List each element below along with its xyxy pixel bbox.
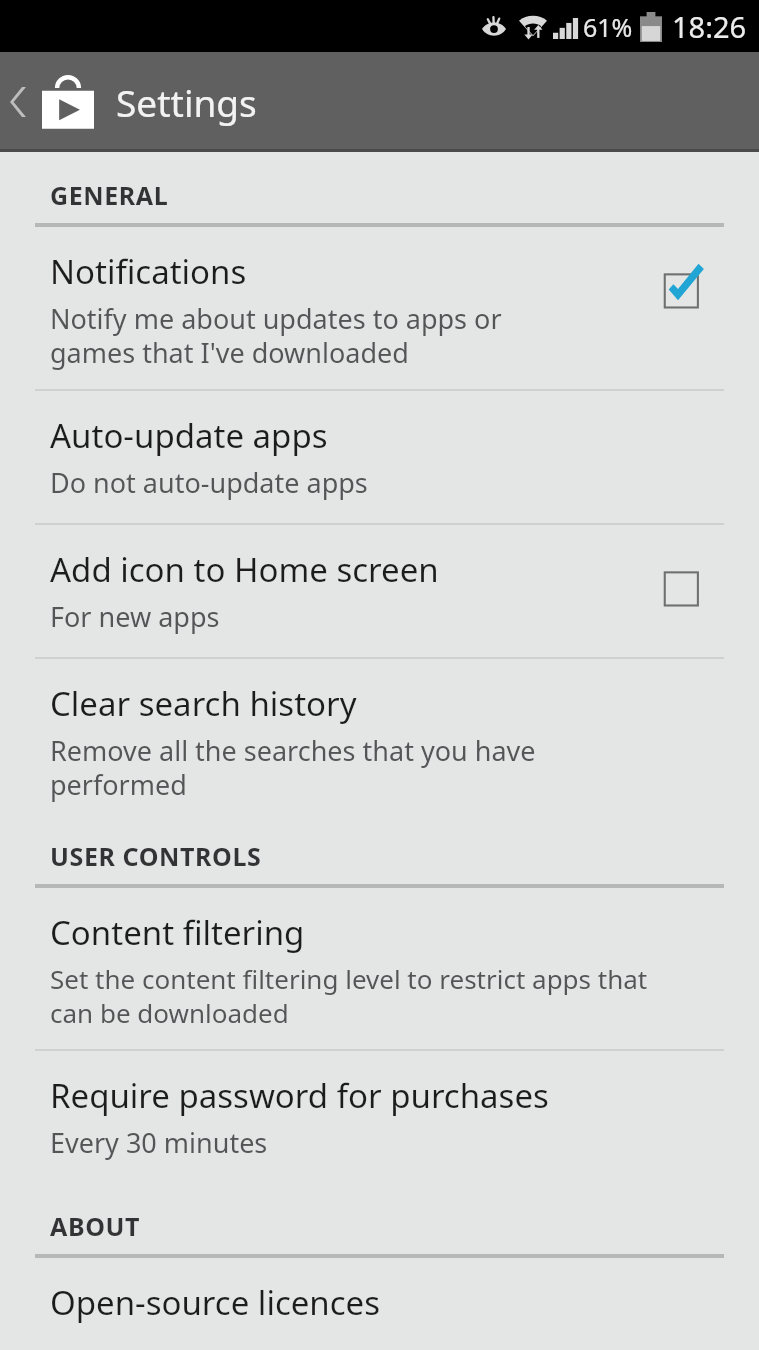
staticText: 61%	[583, 10, 633, 44]
button[interactable]: Open-source licences	[0, 1258, 759, 1350]
staticText: Open-source licences	[50, 1280, 380, 1325]
staticText: Notify me about updates to apps or games…	[50, 300, 502, 371]
button[interactable]: Auto-update apps	[0, 391, 759, 523]
staticText: Do not auto-update apps	[50, 464, 368, 501]
button[interactable]: Clear search history	[0, 659, 759, 813]
staticText: GENERAL	[50, 178, 169, 212]
staticText: Require password for purchases	[50, 1073, 549, 1118]
button[interactable]: Navigate up	[0, 52, 100, 152]
staticText: Settings	[116, 77, 257, 127]
button[interactable]: Unchecked	[661, 564, 709, 612]
staticText: Clear search history	[50, 681, 357, 726]
button[interactable]: Content filtering	[0, 888, 759, 1049]
button[interactable]: Require password for purchases	[0, 1051, 759, 1183]
staticText: Notifications	[50, 249, 247, 294]
staticText: Add icon to Home screen	[50, 547, 439, 592]
staticText: Content filtering	[50, 910, 305, 955]
button[interactable]: Notifications	[0, 227, 759, 389]
button[interactable]: Add icon to Home screen	[0, 525, 759, 657]
staticText: Every 30 minutes	[50, 1124, 268, 1161]
staticText: ABOUT	[50, 1209, 141, 1243]
staticText: For new apps	[50, 598, 220, 635]
staticText: Remove all the searches that you have pe…	[50, 732, 536, 803]
staticText: USER CONTROLS	[50, 839, 262, 873]
staticText: Auto-update apps	[50, 413, 328, 458]
button[interactable]: Checked	[661, 266, 709, 314]
staticText: 18:26	[672, 7, 747, 46]
staticText: Set the content filtering level to restr…	[50, 961, 648, 1031]
